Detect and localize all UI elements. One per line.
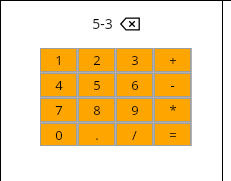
button[interactable]: 5 (78, 73, 115, 97)
staticText: / (132, 126, 137, 144)
staticText: 1 (55, 51, 63, 69)
staticText: 2 (93, 51, 101, 69)
button[interactable]: 1 (40, 48, 77, 72)
button[interactable]: = (154, 123, 191, 146)
staticText: = (169, 126, 177, 144)
button[interactable]: 3 (116, 48, 153, 72)
staticText: 5 (93, 76, 101, 94)
button[interactable]: 9 (116, 98, 153, 122)
button[interactable]: Backspace (120, 17, 140, 31)
button[interactable]: 0 (40, 123, 77, 146)
staticText: . (95, 126, 99, 144)
staticText: 3 (131, 51, 139, 69)
button[interactable]: 4 (40, 73, 77, 97)
staticText: 8 (93, 101, 101, 119)
button[interactable]: * (154, 98, 191, 122)
staticText: * (169, 101, 177, 119)
button[interactable]: + (154, 48, 191, 72)
staticText: 4 (55, 76, 63, 94)
button[interactable]: - (154, 73, 191, 97)
button[interactable]: 7 (40, 98, 77, 122)
button[interactable]: . (78, 123, 115, 146)
button[interactable]: / (116, 123, 153, 146)
button[interactable]: 8 (78, 98, 115, 122)
staticText: 6 (131, 76, 139, 94)
button[interactable]: 2 (78, 48, 115, 72)
staticText: 9 (131, 101, 139, 119)
staticText: - (170, 76, 175, 94)
staticText: 0 (55, 126, 63, 144)
staticText: 5-3 (92, 14, 113, 33)
staticText: 7 (55, 101, 63, 119)
staticText: + (169, 51, 177, 69)
button[interactable]: 6 (116, 73, 153, 97)
